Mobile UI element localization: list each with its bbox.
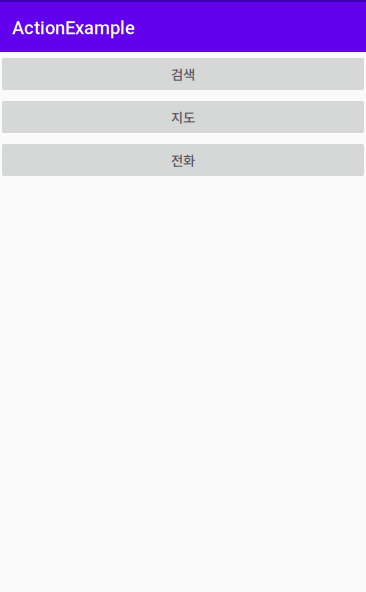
button[interactable]: 검색 — [2, 58, 364, 90]
staticText: 전화 — [171, 150, 195, 170]
staticText: 검색 — [171, 64, 195, 84]
button[interactable]: 지도 — [2, 101, 364, 133]
staticText: 지도 — [171, 107, 195, 127]
staticText: ActionExample — [12, 17, 135, 39]
button[interactable]: 전화 — [2, 144, 364, 176]
